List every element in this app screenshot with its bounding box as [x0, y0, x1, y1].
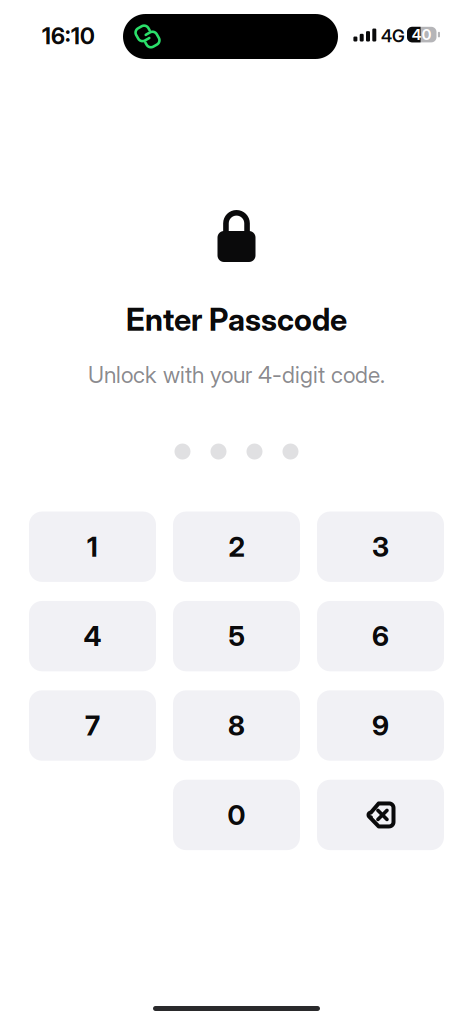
staticText: 9 [372, 709, 389, 742]
button[interactable]: 7 [29, 690, 156, 761]
staticText: 1 [87, 530, 98, 563]
staticText: 5 [228, 619, 244, 653]
staticText: Enter Passcode [126, 301, 347, 338]
button[interactable]: 2 [173, 511, 300, 582]
button[interactable]: 0 [173, 780, 300, 850]
staticText: 2 [228, 530, 244, 563]
staticText: 4G [381, 25, 405, 46]
staticText: 6 [372, 619, 389, 653]
staticText: 16:10 [42, 22, 95, 50]
button[interactable]: 5 [173, 601, 300, 671]
button[interactable]: 6 [317, 601, 444, 671]
staticText: 8 [228, 709, 245, 742]
button[interactable]: 3 [317, 511, 444, 582]
staticText: 0 [227, 798, 245, 831]
staticText: 3 [372, 530, 389, 563]
staticText: 40 [412, 26, 432, 43]
staticText: Unlock with your 4-digit code. [88, 361, 385, 388]
staticText: 7 [85, 709, 100, 742]
button[interactable]: 1 [29, 511, 156, 582]
staticText: 4 [83, 619, 101, 653]
button[interactable]: 9 [317, 690, 444, 761]
button[interactable]: 4 [29, 601, 156, 671]
button[interactable]: 8 [173, 690, 300, 761]
button[interactable]: Delete [317, 780, 444, 850]
